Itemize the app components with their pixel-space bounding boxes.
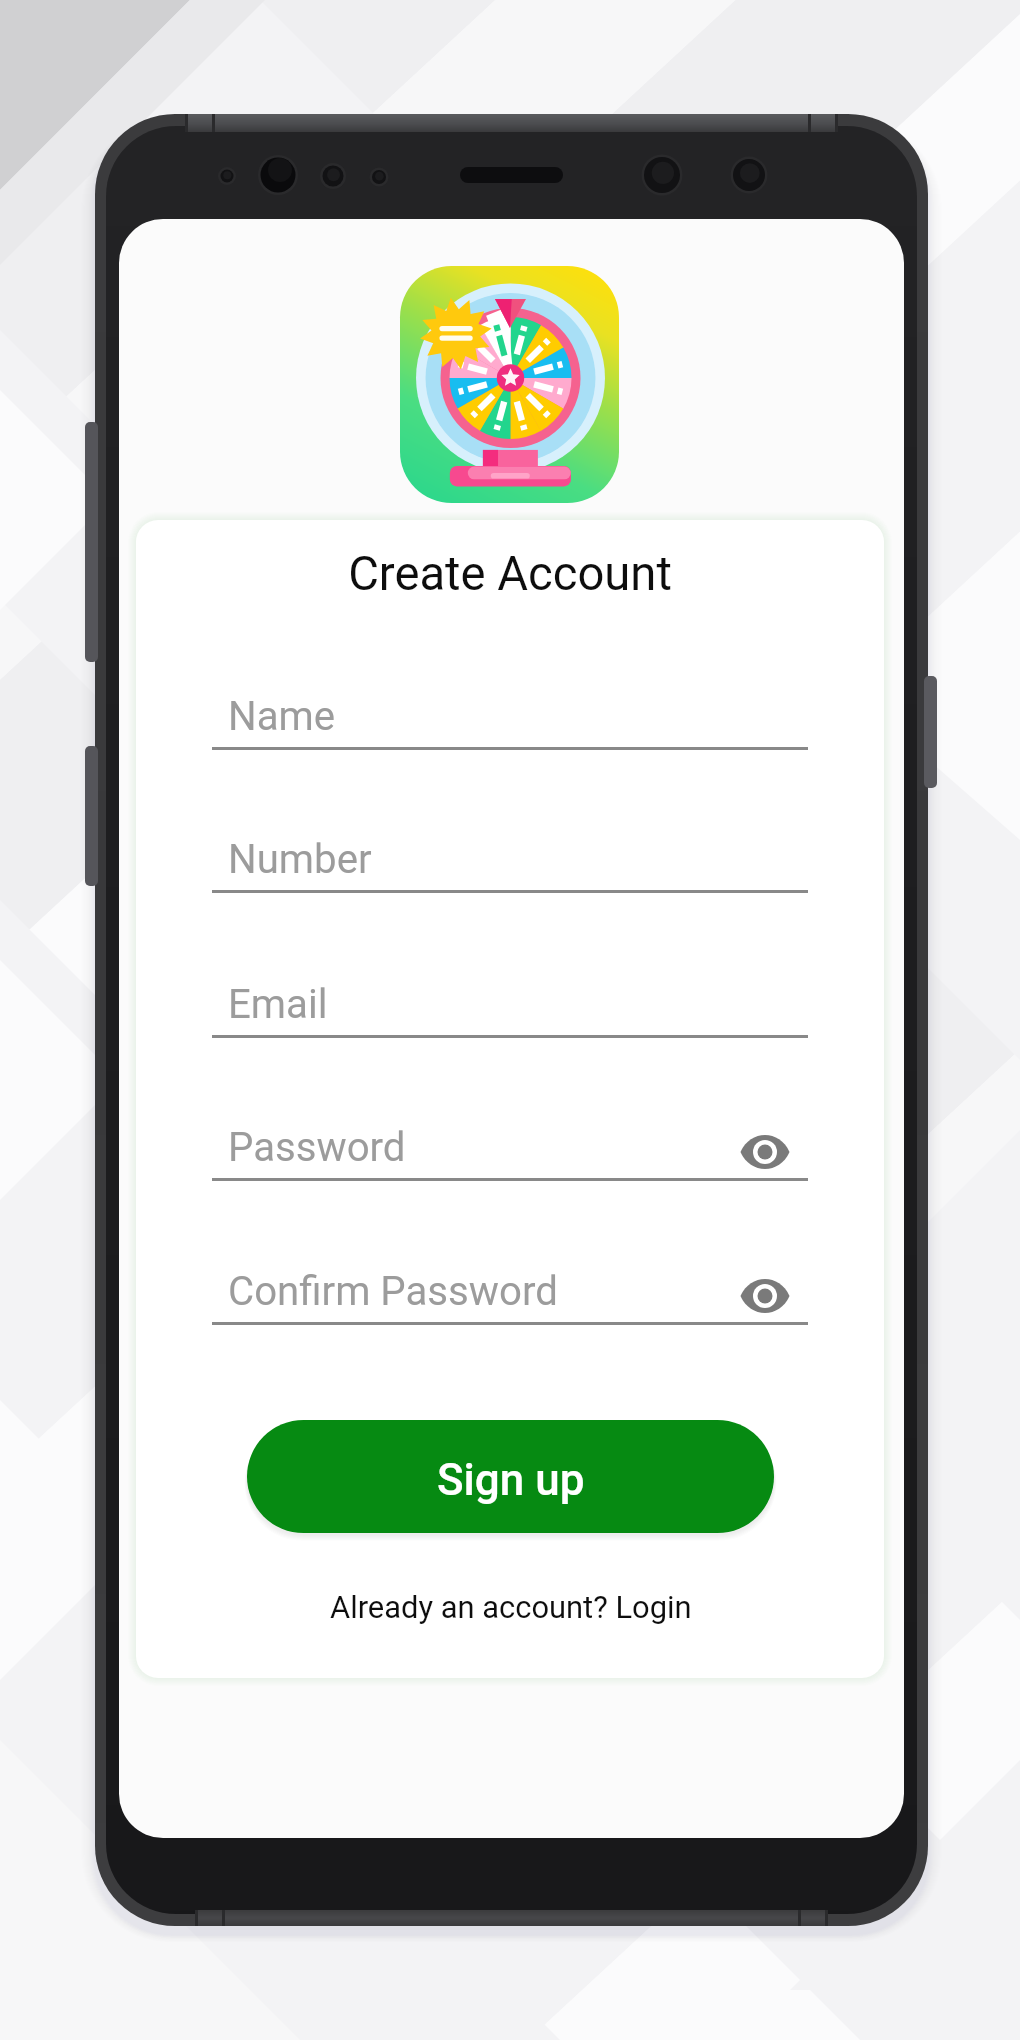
button[interactable]: Show password: [731, 1118, 799, 1186]
button[interactable]: Name: [212, 685, 808, 749]
button[interactable]: Sign up: [247, 1420, 774, 1533]
staticText: Already an account? Login: [330, 1589, 692, 1625]
button[interactable]: Already an account? Login: [247, 1581, 774, 1633]
button[interactable]: Number: [212, 828, 808, 892]
staticText: Number: [228, 836, 372, 883]
staticText: Password: [228, 1124, 406, 1171]
staticText: Sign up: [437, 1454, 585, 1506]
staticText: Email: [228, 981, 328, 1028]
button[interactable]: Password: [212, 1116, 808, 1180]
staticText: Confirm Password: [228, 1268, 558, 1315]
button[interactable]: Show password: [731, 1262, 799, 1330]
button[interactable]: Email: [212, 973, 808, 1037]
button[interactable]: Confirm Password: [212, 1260, 808, 1324]
staticText: Name: [228, 693, 336, 740]
staticText: Create Account: [136, 546, 884, 601]
